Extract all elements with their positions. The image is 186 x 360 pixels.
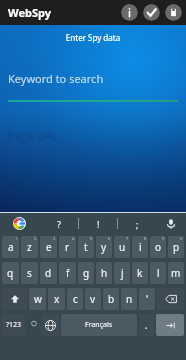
staticText: z	[27, 240, 32, 254]
staticText: h	[101, 266, 108, 280]
button[interactable]: g	[78, 262, 94, 284]
staticText: 4	[72, 236, 75, 241]
staticText: w	[34, 292, 42, 306]
button[interactable]: f	[59, 262, 76, 284]
staticText: 5	[90, 236, 93, 241]
staticText: 7	[126, 236, 129, 241]
button[interactable]: d	[40, 262, 57, 284]
button[interactable]: v	[85, 288, 101, 310]
staticText: o	[155, 240, 162, 254]
button[interactable]: Backspace	[157, 288, 184, 310]
button[interactable]: h	[96, 262, 112, 284]
staticText: l	[157, 266, 160, 280]
button[interactable]: y	[96, 236, 112, 258]
button[interactable]: Emoji	[27, 314, 40, 336]
button[interactable]: k	[132, 262, 148, 284]
button[interactable]: Shift	[2, 288, 27, 310]
staticText: b	[108, 292, 115, 306]
staticText: Keyword to search	[8, 71, 104, 86]
staticText: n	[126, 292, 133, 306]
staticText: x	[54, 292, 60, 306]
staticText: q	[7, 266, 14, 280]
button[interactable]: Keyword to search	[0, 71, 186, 102]
staticText: '	[146, 292, 149, 306]
staticText: a	[8, 240, 14, 254]
staticText: v	[90, 292, 96, 306]
staticText: !	[97, 218, 100, 230]
button[interactable]: Voice input	[156, 213, 186, 234]
staticText: s	[27, 266, 32, 280]
button[interactable]: Google	[0, 213, 38, 234]
staticText: c	[73, 292, 78, 306]
staticText: m	[171, 266, 181, 280]
button[interactable]: m	[168, 262, 184, 284]
button[interactable]: .	[139, 314, 154, 336]
staticText: ?123	[6, 320, 22, 330]
staticText: 8	[144, 236, 147, 241]
button[interactable]: Français	[61, 314, 137, 336]
staticText: e	[46, 240, 52, 254]
button[interactable]: e	[40, 236, 57, 258]
staticText: j	[121, 266, 124, 280]
staticText: r	[65, 240, 70, 254]
staticText: Enter Spy data	[0, 32, 186, 43]
button[interactable]: i	[132, 236, 148, 258]
button[interactable]: ?123	[2, 314, 25, 336]
staticText: 1	[15, 236, 18, 241]
button[interactable]: a	[2, 236, 19, 258]
button[interactable]: l	[150, 262, 166, 284]
button[interactable]: j	[114, 262, 130, 284]
button[interactable]: Change language	[42, 314, 59, 336]
button[interactable]: s	[21, 262, 38, 284]
staticText: k	[137, 266, 143, 280]
staticText: y	[101, 240, 107, 254]
staticText: i	[139, 240, 142, 254]
staticText: Page URL	[8, 128, 58, 143]
staticText: p	[173, 240, 180, 254]
staticText: f	[66, 266, 70, 280]
staticText: t	[84, 240, 88, 254]
button[interactable]: q	[2, 262, 19, 284]
staticText: Français	[85, 320, 113, 330]
staticText: 2	[34, 236, 37, 241]
staticText: 0	[180, 236, 183, 241]
button[interactable]: n	[121, 288, 137, 310]
button[interactable]: !	[79, 213, 117, 234]
button[interactable]: b	[103, 288, 119, 310]
button[interactable]: x	[48, 288, 65, 310]
button[interactable]: p	[168, 236, 184, 258]
button[interactable]: z	[21, 236, 38, 258]
button[interactable]: w	[29, 288, 46, 310]
button[interactable]: c	[67, 288, 83, 310]
staticText: WebSpy	[8, 5, 52, 20]
button[interactable]: Confirm	[143, 4, 160, 21]
button[interactable]: u	[114, 236, 130, 258]
staticText: u	[119, 240, 126, 254]
button[interactable]: ?	[39, 213, 78, 234]
button[interactable]: Page URL	[0, 128, 186, 143]
button[interactable]: Next	[156, 314, 184, 336]
button[interactable]: t	[78, 236, 94, 258]
staticText: 6	[108, 236, 111, 241]
button[interactable]: Save	[165, 4, 182, 21]
staticText: ?	[57, 218, 61, 230]
staticText: ;	[136, 218, 139, 230]
staticText: g	[83, 266, 90, 280]
button[interactable]: '	[139, 288, 155, 310]
staticText: d	[45, 266, 52, 280]
button[interactable]: ;	[118, 213, 156, 234]
button[interactable]: o	[150, 236, 166, 258]
button[interactable]: r	[59, 236, 76, 258]
staticText: 3	[53, 236, 56, 241]
staticText: .	[145, 318, 148, 332]
button[interactable]: About	[121, 4, 138, 21]
staticText: 9	[162, 236, 165, 241]
